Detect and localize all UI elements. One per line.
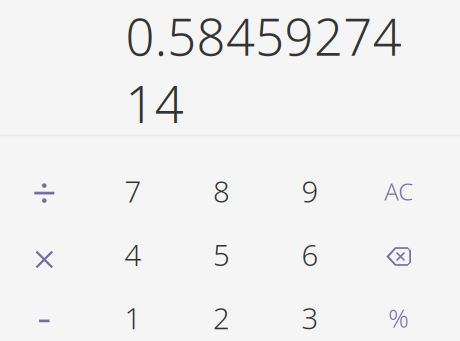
staticText: % — [388, 301, 409, 335]
staticText: 5 — [213, 235, 230, 274]
button[interactable]: AC — [354, 159, 443, 223]
button[interactable]: 3 — [266, 286, 354, 341]
button[interactable]: 4 — [89, 223, 177, 286]
button[interactable]: 1 — [89, 286, 177, 341]
staticText: 0.5845927414 — [125, 2, 402, 137]
button[interactable]: 5 — [177, 223, 266, 286]
button[interactable]: Delete — [354, 223, 443, 286]
staticText: AC — [384, 175, 413, 207]
staticText: 3 — [302, 298, 319, 337]
staticText: 9 — [302, 172, 319, 211]
button[interactable]: Multiply — [0, 223, 89, 286]
button[interactable]: Divide — [0, 159, 89, 223]
button[interactable]: 8 — [177, 159, 266, 223]
button[interactable]: 6 — [266, 223, 354, 286]
staticText: 7 — [124, 172, 141, 211]
button[interactable]: 7 — [89, 159, 177, 223]
button[interactable]: 2 — [177, 286, 266, 341]
button[interactable]: 9 — [266, 159, 354, 223]
staticText: 8 — [213, 172, 230, 211]
button[interactable]: Minus — [0, 286, 89, 341]
staticText: 4 — [124, 235, 141, 274]
staticText: 2 — [213, 298, 230, 337]
button[interactable]: % — [354, 286, 443, 341]
staticText: 1 — [124, 298, 141, 337]
staticText: 6 — [302, 235, 319, 274]
